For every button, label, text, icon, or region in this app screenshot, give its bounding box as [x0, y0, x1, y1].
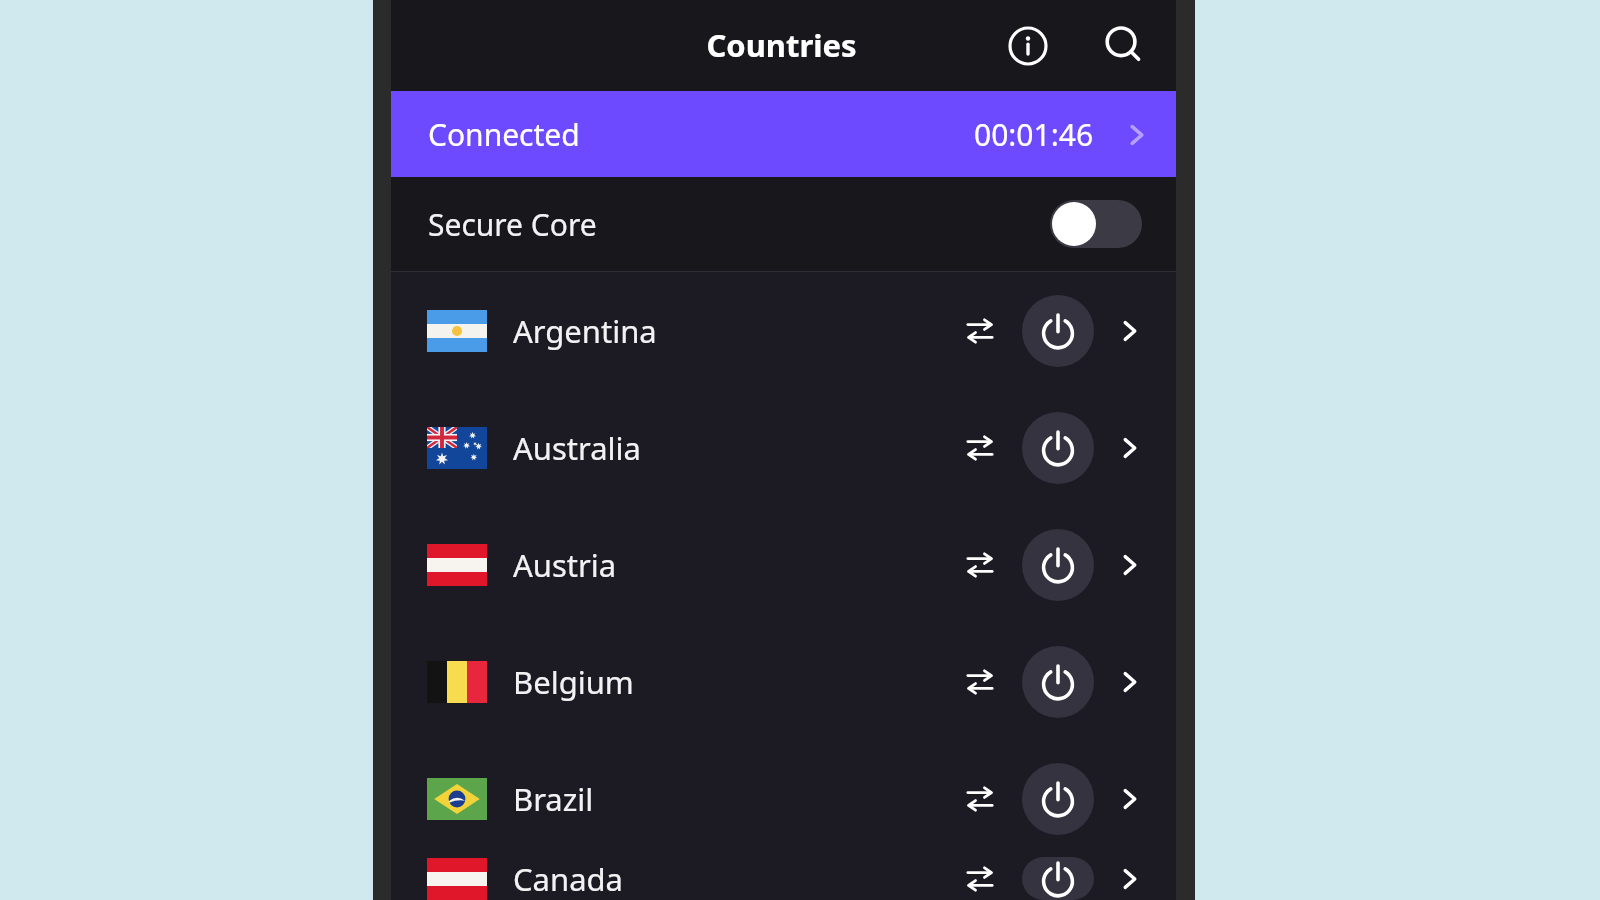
- button[interactable]: Connect to Australia: [1022, 412, 1094, 484]
- button[interactable]: Search: [1096, 18, 1152, 74]
- button[interactable]: Change server for Argentina: [952, 303, 1008, 359]
- staticText: Canada: [513, 858, 623, 900]
- button[interactable]: Open Argentina servers: [1108, 309, 1152, 353]
- button[interactable]: Open Australia servers: [1108, 426, 1152, 470]
- button[interactable]: Connected: [391, 91, 1176, 177]
- button[interactable]: [1050, 200, 1142, 248]
- staticText: 00:01:46: [974, 114, 1094, 155]
- staticText: Connected: [428, 114, 580, 155]
- button[interactable]: Change server for Australia: [952, 420, 1008, 476]
- staticText: Argentina: [513, 310, 657, 352]
- button[interactable]: Connect to Argentina: [1022, 295, 1094, 367]
- button[interactable]: Change server for Canada: [952, 857, 1008, 900]
- staticText: Australia: [513, 427, 641, 469]
- button[interactable]: Connect to Austria: [1022, 529, 1094, 601]
- staticText: Secure Core: [428, 204, 597, 245]
- button[interactable]: Change server for Brazil: [952, 771, 1008, 827]
- button[interactable]: Open Austria servers: [1108, 543, 1152, 587]
- button[interactable]: Connect to Brazil: [1022, 763, 1094, 835]
- button[interactable]: Open Canada servers: [1108, 857, 1152, 900]
- button[interactable]: Open Belgium servers: [1108, 660, 1152, 704]
- button[interactable]: Secure Core: [391, 177, 1176, 271]
- button[interactable]: Info: [1000, 18, 1056, 74]
- button[interactable]: Connect to Belgium: [1022, 646, 1094, 718]
- button[interactable]: Belgium: [391, 623, 1176, 740]
- staticText: Brazil: [513, 778, 594, 820]
- staticText: Belgium: [513, 661, 634, 703]
- button[interactable]: Australia: [391, 389, 1176, 506]
- button[interactable]: Change server for Belgium: [952, 654, 1008, 710]
- button[interactable]: Connect to Canada: [1022, 857, 1094, 900]
- button[interactable]: Open Brazil servers: [1108, 777, 1152, 821]
- button[interactable]: Canada: [391, 857, 1176, 900]
- button[interactable]: Change server for Austria: [952, 537, 1008, 593]
- button[interactable]: Austria: [391, 506, 1176, 623]
- button[interactable]: Brazil: [391, 740, 1176, 857]
- staticText: Austria: [513, 544, 617, 586]
- staticText: Countries: [706, 24, 857, 66]
- button[interactable]: Argentina: [391, 272, 1176, 389]
